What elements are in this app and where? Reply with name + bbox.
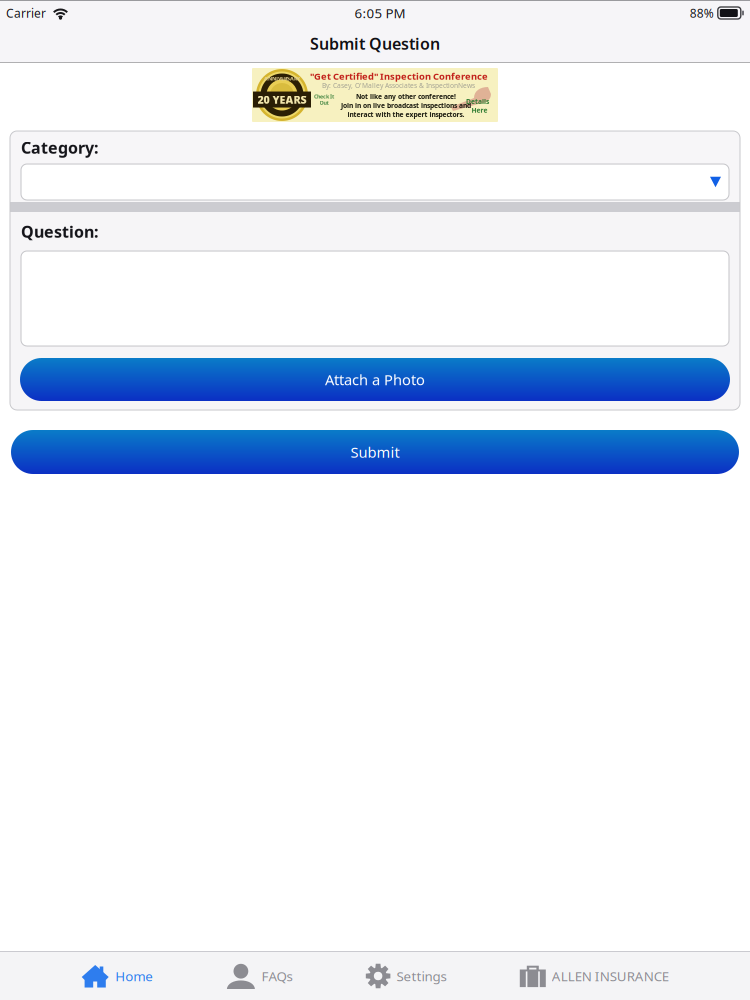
staticText: By: Casey, O'Malley Associates & Inspect…: [322, 81, 475, 90]
staticText: Home: [115, 967, 153, 985]
staticText: Check It: [314, 93, 334, 100]
staticText: ALLEN INSURANCE: [552, 967, 669, 985]
staticText: Attach a Photo: [325, 370, 425, 389]
staticText: Details: [466, 97, 489, 106]
staticText: 20 YEARS: [257, 92, 306, 107]
button[interactable]: Category: [21, 164, 729, 200]
button[interactable]: Get Certified Inspection Conference adve…: [252, 68, 498, 122]
staticText: Not like any other conference!: [356, 92, 456, 101]
staticText: Question:: [21, 221, 98, 242]
staticText: Join in on live broadcast inspections an…: [341, 101, 471, 110]
staticText: 6:05 PM: [354, 4, 405, 22]
staticText: interact with the expert inspectors.: [347, 110, 464, 119]
staticText: "Get Certified" Inspection Conference: [310, 70, 488, 82]
button[interactable]: ALLEN INSURANCE: [520, 952, 669, 1000]
staticText: Out: [319, 99, 328, 106]
button[interactable]: Home: [81, 952, 153, 1000]
button[interactable]: Question: [21, 251, 729, 346]
staticText: Submit: [350, 442, 399, 462]
button[interactable]: Settings: [366, 952, 447, 1000]
staticText: Settings: [397, 967, 447, 985]
staticText: Category:: [21, 137, 98, 158]
staticText: Submit Question: [310, 33, 440, 54]
button[interactable]: FAQs: [226, 952, 292, 1000]
staticText: Carrier: [6, 5, 46, 21]
staticText: Here: [471, 106, 487, 115]
staticText: 88%: [690, 5, 714, 21]
button[interactable]: Submit: [11, 430, 739, 474]
staticText: ANNIVERSARY: [264, 75, 300, 82]
button[interactable]: Attach a Photo: [20, 358, 730, 401]
staticText: FAQs: [261, 967, 292, 985]
